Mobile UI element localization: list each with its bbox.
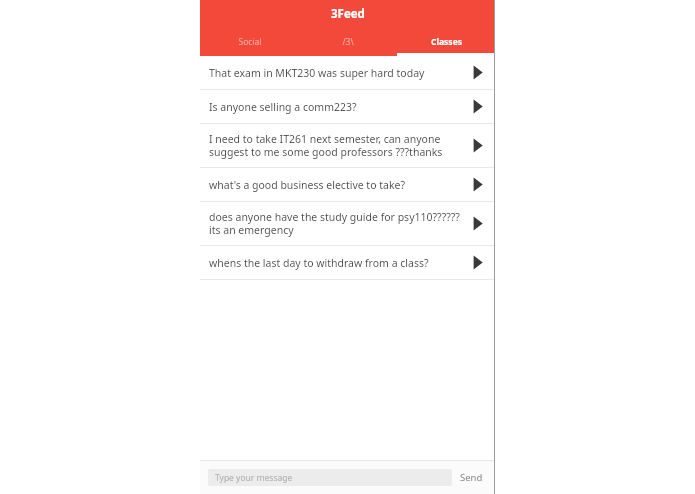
button[interactable]: That exam in MKT230 was super hard today bbox=[200, 56, 495, 89]
other: Open thread bbox=[471, 99, 484, 114]
staticText: That exam in MKT230 was super hard today bbox=[209, 66, 461, 80]
staticText: I need to take IT261 next semester, can … bbox=[209, 132, 461, 159]
staticText: Send bbox=[460, 471, 483, 484]
staticText: whens the last day to withdraw from a cl… bbox=[209, 256, 461, 270]
staticText: /3\ bbox=[342, 36, 354, 48]
other: Open thread bbox=[471, 65, 484, 80]
button[interactable]: I need to take IT261 next semester, can … bbox=[200, 124, 495, 167]
staticText: Social bbox=[238, 36, 262, 48]
other: Open thread bbox=[471, 177, 484, 192]
staticText: what's a good business elective to take? bbox=[209, 178, 461, 192]
button[interactable]: Type your message bbox=[208, 469, 452, 486]
button[interactable]: whens the last day to withdraw from a cl… bbox=[200, 246, 495, 279]
button[interactable]: /3\ bbox=[299, 27, 397, 56]
other: Open thread bbox=[471, 216, 484, 231]
button[interactable]: Is anyone selling a comm223? bbox=[200, 90, 495, 123]
button[interactable]: Social bbox=[200, 27, 299, 56]
staticText: does anyone have the study guide for psy… bbox=[209, 210, 461, 237]
other: Open thread bbox=[471, 138, 484, 153]
staticText: Is anyone selling a comm223? bbox=[209, 100, 461, 114]
button[interactable]: Send bbox=[452, 461, 491, 494]
button[interactable]: does anyone have the study guide for psy… bbox=[200, 202, 495, 245]
staticText: Type your message bbox=[215, 472, 293, 484]
staticText: Classes bbox=[431, 36, 462, 48]
button[interactable]: what's a good business elective to take? bbox=[200, 168, 495, 201]
staticText: 3Feed bbox=[331, 6, 365, 22]
other: Open thread bbox=[471, 255, 484, 270]
button[interactable]: Classes bbox=[397, 27, 495, 56]
